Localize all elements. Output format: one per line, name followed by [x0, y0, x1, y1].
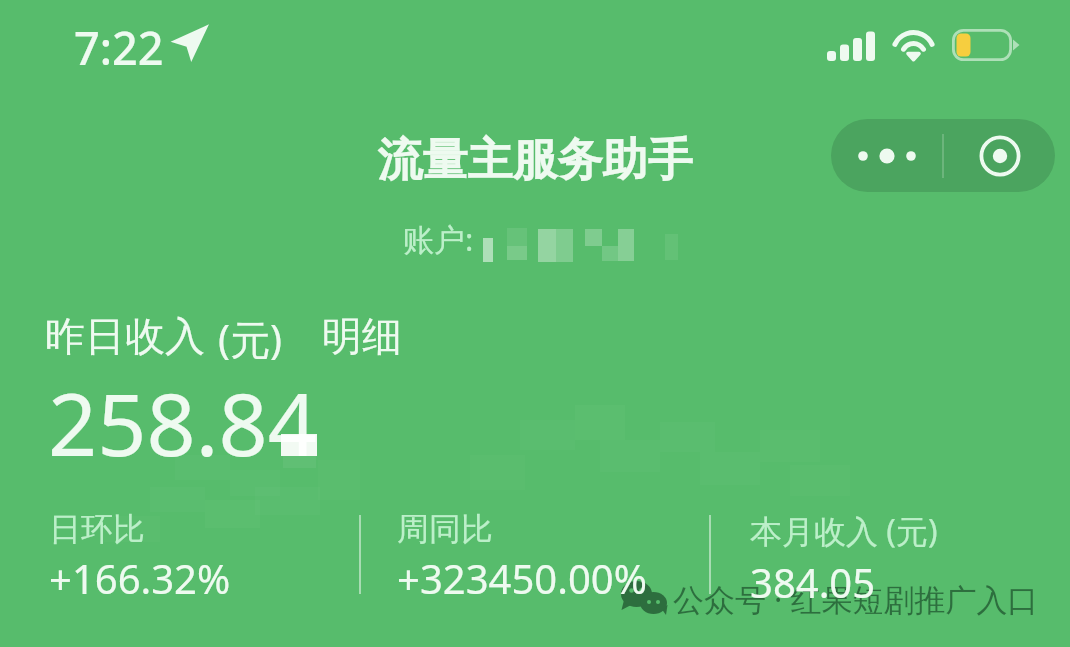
- staticText: 258.84: [48, 364, 318, 481]
- button[interactable]: Close mini program: [944, 119, 1055, 192]
- staticText: 账户:: [403, 218, 474, 260]
- staticText: (元): [218, 311, 282, 366]
- button[interactable]: More options: [831, 119, 942, 192]
- staticText: 日环比: [49, 509, 145, 549]
- button[interactable]: 明细: [314, 303, 410, 369]
- staticText: +166.32%: [49, 551, 231, 605]
- staticText: 周同比: [397, 509, 493, 549]
- staticText: 7:22: [74, 17, 164, 78]
- staticText: +323450.00%: [397, 551, 647, 605]
- staticText: 流量主服务助手: [0, 132, 1070, 189]
- staticText: 明细: [322, 311, 402, 361]
- staticText: 公众号 · 红果短剧推广入口: [673, 578, 1039, 620]
- other: Location: [174, 26, 206, 58]
- staticText: 384.05: [750, 555, 876, 609]
- staticText: 昨日收入: [45, 311, 205, 361]
- staticText: 本月收入 (元): [750, 509, 938, 553]
